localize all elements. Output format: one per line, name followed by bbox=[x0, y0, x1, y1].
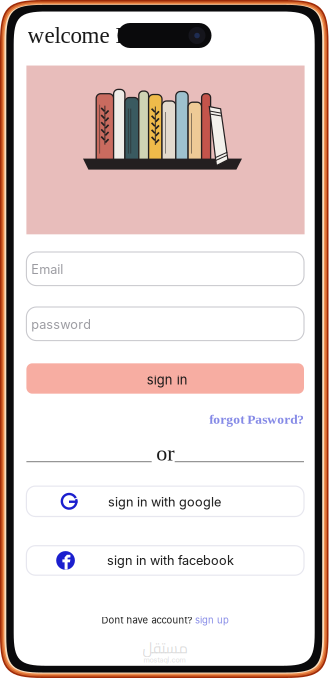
staticText: sign up bbox=[195, 614, 229, 626]
staticText: sign in bbox=[147, 372, 188, 388]
staticText: Dont have account? bbox=[101, 614, 192, 626]
button[interactable]: sign in with google bbox=[26, 486, 304, 516]
staticText: Email bbox=[31, 262, 63, 277]
staticText: welcome Back bbox=[27, 23, 161, 48]
staticText: or bbox=[156, 441, 174, 465]
staticText: mostaql.com bbox=[143, 656, 185, 664]
staticText: مستقل bbox=[142, 634, 187, 662]
staticText: forgot Pasword? bbox=[209, 412, 304, 426]
button[interactable]: sign in bbox=[26, 363, 304, 394]
staticText: sign in with facebook bbox=[107, 553, 234, 568]
staticText: sign in with google bbox=[108, 494, 221, 509]
button[interactable]: sign up bbox=[195, 614, 229, 626]
staticText: password bbox=[31, 317, 91, 332]
button[interactable]: sign in with facebook bbox=[26, 546, 304, 575]
button[interactable]: forgot Pasword? bbox=[134, 410, 304, 428]
